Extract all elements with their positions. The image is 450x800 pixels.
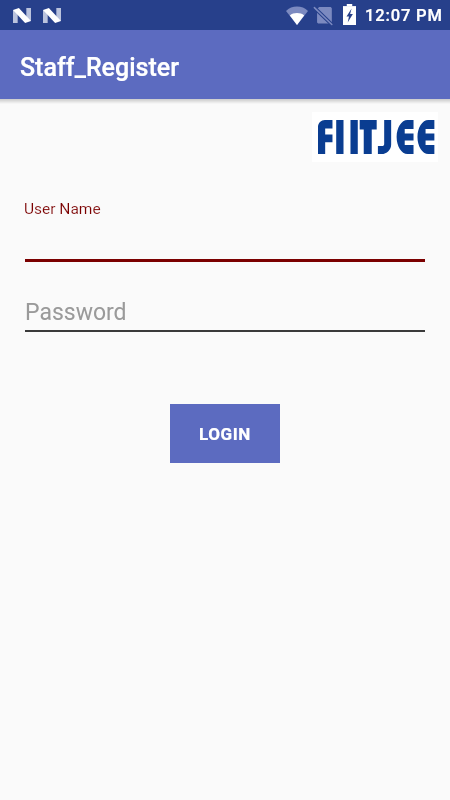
button[interactable]: Password — [25, 292, 425, 332]
staticText: Staff_Register — [20, 53, 180, 82]
button[interactable]: LOGIN — [170, 404, 280, 463]
button[interactable]: User Name — [25, 190, 425, 262]
staticText: Password — [25, 299, 127, 326]
staticText: LOGIN — [199, 424, 251, 444]
staticText: 12:07 PM — [365, 6, 443, 25]
staticText: User Name — [24, 200, 101, 218]
